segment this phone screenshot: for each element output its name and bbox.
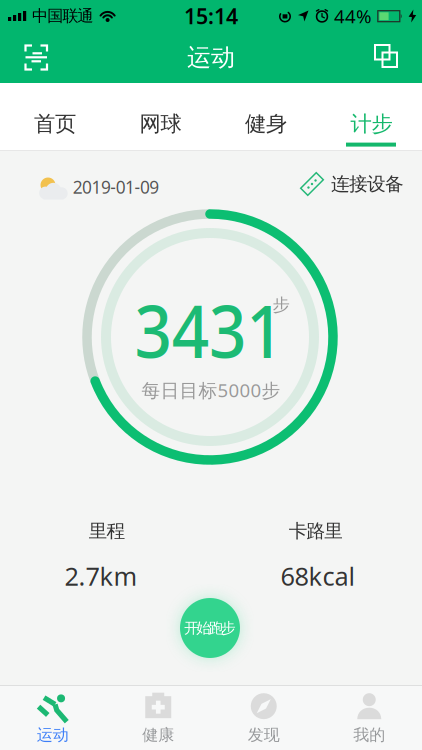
- button[interactable]: 我的: [316, 687, 422, 749]
- button[interactable]: [364, 35, 408, 79]
- staticText: 15:14: [184, 2, 238, 30]
- staticText: 开始跑步: [184, 619, 236, 637]
- staticText: 中国联通: [32, 6, 94, 26]
- staticText: 我的: [353, 725, 385, 745]
- staticText: 网球: [139, 111, 181, 137]
- button[interactable]: 连接设备: [300, 172, 404, 196]
- staticText: 运动: [37, 725, 69, 745]
- staticText: 健康: [142, 725, 174, 745]
- staticText: 68kcal: [280, 559, 355, 593]
- button[interactable]: 健身: [211, 83, 316, 150]
- staticText: 3431: [127, 282, 291, 378]
- button[interactable]: 首页: [0, 83, 105, 150]
- staticText: 卡路里: [289, 519, 343, 542]
- staticText: 首页: [34, 111, 76, 137]
- staticText: 每日目标5000步: [141, 378, 280, 402]
- staticText: 连接设备: [331, 172, 404, 195]
- button[interactable]: 发现: [211, 687, 316, 749]
- button[interactable]: 健康: [105, 687, 211, 749]
- staticText: 里程: [89, 519, 125, 542]
- button[interactable]: 计步: [316, 83, 422, 150]
- button[interactable]: 网球: [105, 83, 211, 150]
- staticText: 2.7km: [64, 559, 137, 593]
- button[interactable]: [14, 35, 58, 79]
- staticText: 44%: [334, 4, 372, 28]
- button[interactable]: 运动: [0, 687, 105, 749]
- staticText: 2019-01-09: [73, 175, 159, 198]
- staticText: 健身: [245, 111, 287, 137]
- staticText: 计步: [350, 111, 392, 137]
- staticText: 步: [272, 294, 289, 316]
- staticText: 运动: [187, 43, 235, 72]
- button[interactable]: 开始跑步: [180, 598, 240, 658]
- staticText: 发现: [248, 725, 280, 745]
